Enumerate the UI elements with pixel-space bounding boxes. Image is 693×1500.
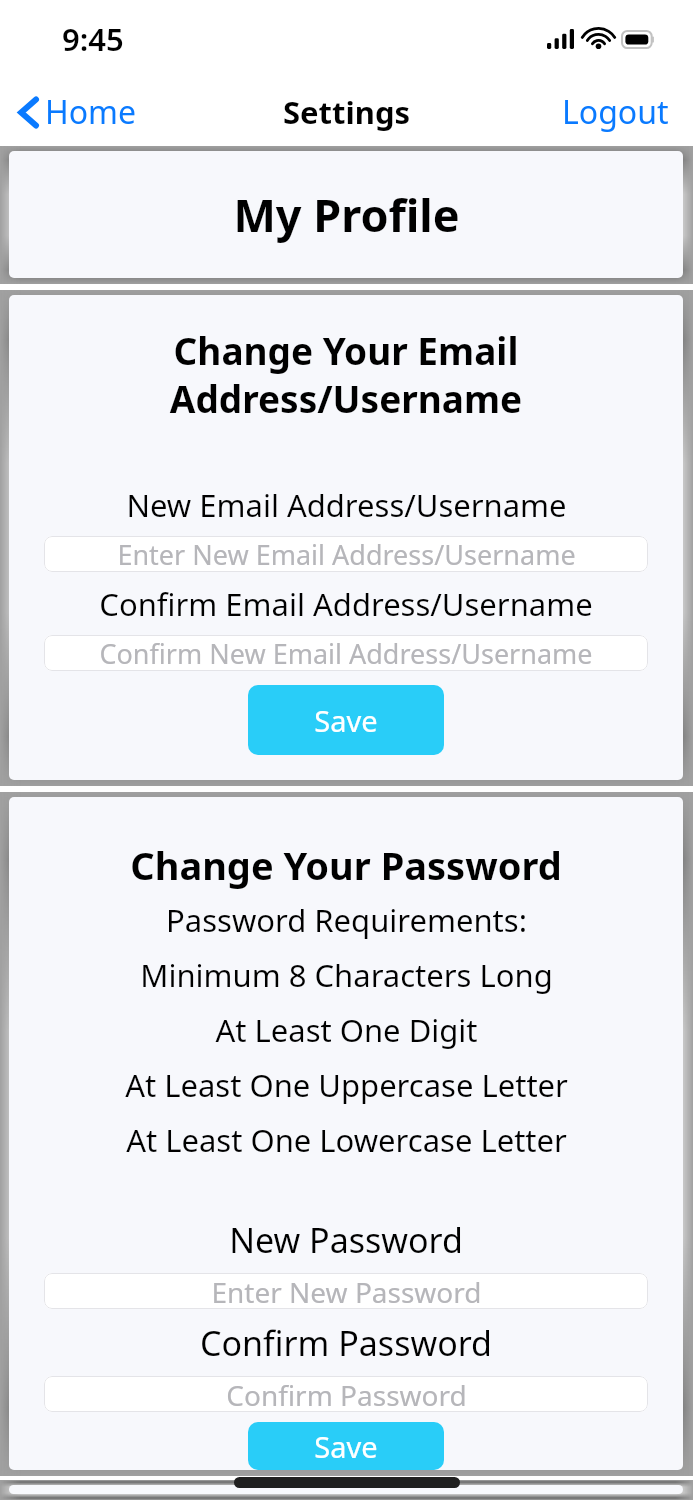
- staticText: Change Your Password: [130, 839, 562, 891]
- staticText: Save: [314, 1427, 378, 1466]
- button[interactable]: Enter New Email Address/Username: [44, 536, 648, 572]
- staticText: New Password: [229, 1217, 463, 1263]
- button[interactable]: Save: [248, 685, 444, 755]
- staticText: Enter New Email Address/Username: [117, 536, 576, 572]
- button[interactable]: Enter New Password: [44, 1273, 648, 1309]
- staticText: At Least One Uppercase Letter: [125, 1064, 568, 1106]
- button[interactable]: Logout: [562, 90, 669, 134]
- staticText: Confirm Password: [200, 1320, 492, 1366]
- staticText: Change Your Email Address/Username: [9, 325, 683, 424]
- staticText: Home: [45, 90, 137, 134]
- staticText: 9:45: [62, 18, 124, 60]
- staticText: Confirm New Email Address/Username: [99, 635, 593, 671]
- staticText: Minimum 8 Characters Long: [140, 954, 553, 996]
- staticText: Confirm Password: [226, 1376, 467, 1412]
- staticText: Save: [314, 701, 378, 740]
- button[interactable]: Confirm Password: [44, 1376, 648, 1412]
- staticText: Confirm Email Address/Username: [99, 583, 593, 625]
- staticText: At Least One Lowercase Letter: [126, 1119, 567, 1161]
- staticText: Logout: [562, 90, 669, 134]
- button[interactable]: Home: [18, 90, 137, 134]
- staticText: New Email Address/Username: [126, 484, 567, 526]
- staticText: Password Requirements:: [166, 899, 527, 941]
- button[interactable]: Confirm New Email Address/Username: [44, 635, 648, 671]
- staticText: Enter New Password: [211, 1273, 482, 1309]
- staticText: My Profile: [233, 184, 460, 245]
- button[interactable]: Save: [248, 1422, 444, 1470]
- staticText: Settings: [283, 91, 411, 133]
- staticText: At Least One Digit: [215, 1009, 478, 1051]
